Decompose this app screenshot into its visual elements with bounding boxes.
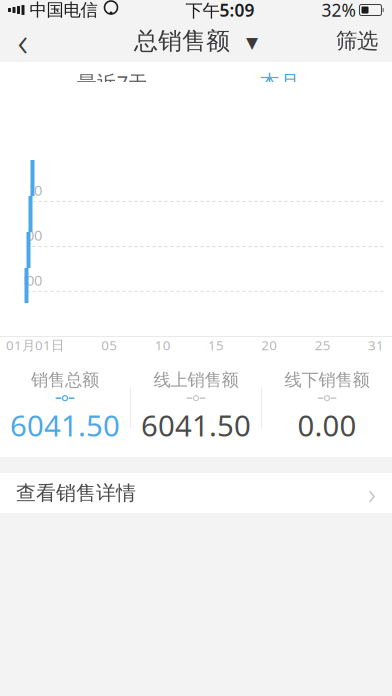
staticText: 20	[261, 336, 277, 354]
staticText: 最近7天	[77, 69, 148, 96]
staticText: 本月	[260, 70, 300, 95]
staticText: 0.00	[297, 406, 356, 445]
staticText: 查看销售详情	[16, 481, 136, 505]
staticText: 15	[208, 336, 224, 354]
button[interactable]: 最近7天	[57, 62, 167, 110]
staticText: 4000	[10, 225, 42, 245]
staticText: 2000	[10, 270, 42, 290]
staticText: 线上销售额	[153, 369, 238, 391]
button[interactable]: 筛选	[322, 20, 392, 62]
staticText: ›	[368, 473, 376, 512]
staticText: 10	[155, 336, 171, 354]
button[interactable]: 返回	[0, 20, 46, 62]
staticText: 6041.50	[141, 406, 251, 445]
staticText: 销售总额	[31, 369, 99, 391]
staticText: 6041.50	[10, 406, 120, 445]
staticText: 总销售额 ▾	[134, 26, 258, 56]
staticText: 线下销售额	[284, 369, 369, 391]
staticText: 6000	[10, 180, 42, 200]
staticText: 31	[368, 336, 384, 354]
staticText: 25	[315, 336, 331, 354]
staticText: 32%	[321, 0, 355, 21]
staticText: 中国电信	[29, 0, 97, 21]
staticText: 05	[101, 336, 117, 354]
button[interactable]: 总销售额 ▾	[120, 20, 272, 62]
staticText: 01月01日	[6, 336, 64, 354]
staticText: 筛选	[336, 28, 378, 54]
button[interactable]: 查看销售详情	[0, 473, 392, 513]
button[interactable]: 本月	[225, 62, 335, 110]
staticText: ‹	[17, 14, 28, 67]
staticText: 下午5:09	[185, 0, 254, 21]
